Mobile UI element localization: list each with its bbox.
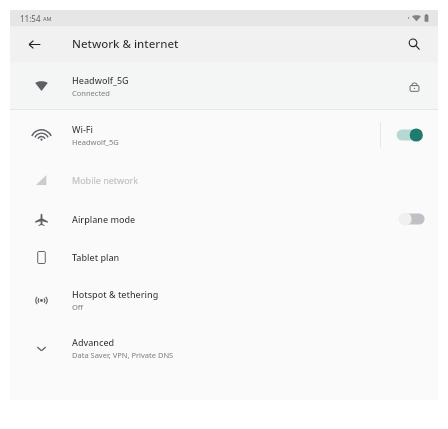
staticText: Data Saver, VPN, Private DNS (72, 350, 174, 360)
button[interactable]: Wi-Fi (10, 110, 438, 160)
staticText: Mobile network (72, 174, 139, 186)
staticText: Headwolf_5G (72, 137, 119, 147)
button[interactable]: Hotspot & tethering (10, 276, 438, 324)
staticText: Network & internet (72, 36, 179, 52)
staticText: Wi-Fi (72, 123, 93, 135)
button[interactable]: Headwolf_5G (10, 62, 438, 109)
button[interactable]: Toggle on (394, 124, 428, 146)
button[interactable]: Toggle off (394, 208, 428, 230)
staticText: Advanced (72, 336, 115, 348)
button[interactable]: Airplane mode (10, 200, 438, 238)
staticText: Off (72, 302, 84, 312)
staticText: 11:54 (20, 13, 41, 24)
staticText: Hotspot & tethering (72, 288, 159, 300)
staticText: Connected (72, 88, 110, 98)
staticText: Tablet plan (72, 251, 120, 263)
button[interactable]: Secured network (402, 74, 426, 98)
button[interactable]: Back (22, 32, 46, 56)
button[interactable]: Tablet plan (10, 238, 438, 276)
button[interactable]: Search (402, 32, 426, 56)
staticText: Airplane mode (72, 213, 136, 225)
button[interactable]: Advanced (10, 324, 438, 372)
staticText: AM (43, 15, 52, 22)
staticText: Headwolf_5G (72, 74, 129, 86)
